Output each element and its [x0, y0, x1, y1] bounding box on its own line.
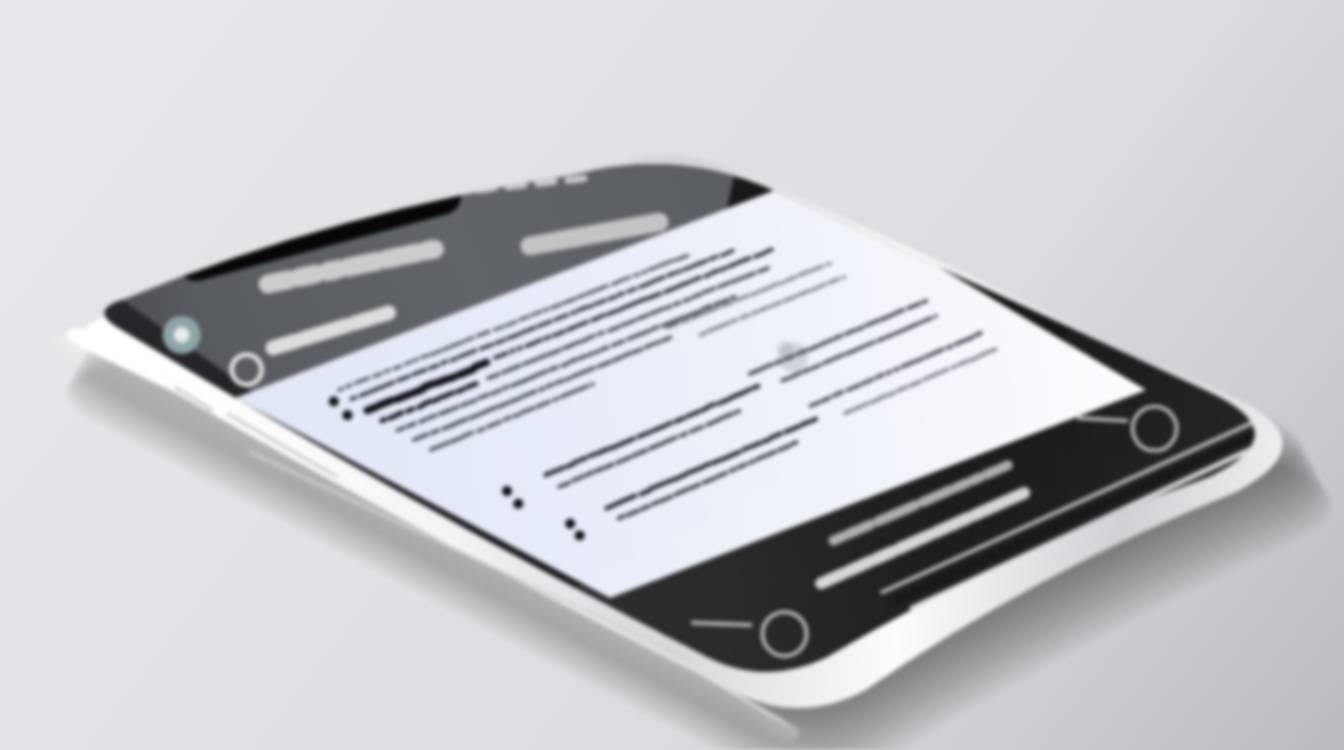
- button[interactable]: Account avatar: [152, 288, 214, 350]
- button[interactable]: Back: [744, 576, 828, 660]
- button[interactable]: More options: [1122, 386, 1206, 470]
- button[interactable]: Bottom navigation: [820, 470, 1120, 590]
- button[interactable]: Status icons: [452, 166, 592, 212]
- button[interactable]: Search: [508, 202, 678, 260]
- button[interactable]: Menu: [218, 324, 280, 386]
- button[interactable]: Smartphone displaying an article: [0, 0, 1344, 750]
- button[interactable]: Article content: [236, 366, 1136, 598]
- button[interactable]: Screen title: [246, 240, 446, 302]
